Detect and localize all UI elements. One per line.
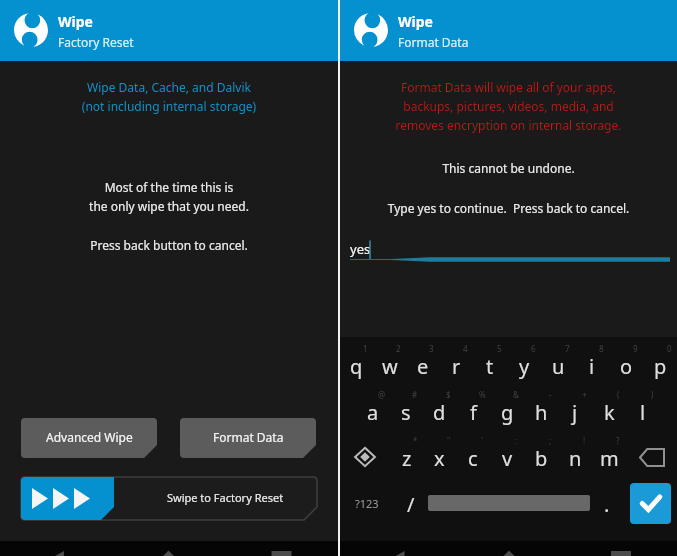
staticText: 2	[396, 343, 401, 354]
button[interactable]: yes	[350, 240, 677, 264]
staticText: Wipe	[58, 12, 93, 31]
button[interactable]: ?123	[340, 480, 394, 526]
staticText: $	[446, 389, 451, 400]
staticText: #	[412, 389, 418, 400]
button[interactable]: -	[524, 388, 558, 434]
staticText: Format Data will wipe all of your apps,	[340, 79, 677, 95]
button[interactable]: 9	[609, 342, 643, 388]
button[interactable]: "	[423, 434, 456, 480]
staticText: k	[604, 399, 615, 426]
button[interactable]: 2	[373, 342, 406, 388]
button[interactable]: Advanced Wipe	[21, 418, 157, 458]
button[interactable]: (	[592, 388, 626, 434]
staticText: -	[549, 389, 552, 400]
staticText: u	[552, 353, 565, 380]
button[interactable]: 0	[643, 342, 677, 388]
staticText: 8	[599, 343, 604, 354]
button[interactable]: Home	[112, 541, 225, 556]
button[interactable]: *	[390, 434, 423, 480]
button[interactable]: 5	[473, 342, 507, 388]
button[interactable]: 6	[507, 342, 541, 388]
button[interactable]: 7	[541, 342, 575, 388]
button[interactable]: Back	[0, 541, 112, 556]
button[interactable]: )	[626, 388, 660, 434]
button[interactable]: @	[356, 388, 389, 434]
staticText: Press back button to cancel.	[0, 237, 338, 253]
staticText: ?123	[355, 496, 379, 511]
staticText: t	[486, 353, 494, 380]
staticText: v	[502, 445, 513, 472]
button[interactable]: 8	[575, 342, 609, 388]
staticText: p	[654, 353, 667, 380]
staticText: e	[417, 353, 429, 380]
staticText: This cannot be undone.	[340, 160, 677, 176]
button[interactable]: :	[490, 434, 524, 480]
staticText: (not including internal storage)	[0, 98, 338, 114]
button[interactable]: Recents	[225, 541, 338, 556]
staticText: Most of the time this is	[0, 179, 338, 195]
button[interactable]: 4	[439, 342, 473, 388]
staticText: f	[470, 399, 477, 426]
staticText: c	[468, 445, 478, 472]
button[interactable]: Shift	[340, 434, 390, 480]
staticText: :	[515, 435, 518, 446]
button[interactable]: Back	[340, 541, 453, 556]
button[interactable]: 3	[406, 342, 439, 388]
staticText: y	[519, 353, 530, 380]
staticText: ?	[616, 435, 620, 446]
staticText: 9	[633, 343, 638, 354]
staticText: @	[378, 389, 386, 400]
staticText: Type yes to continue. Press back to canc…	[340, 200, 677, 216]
staticText: q	[350, 353, 363, 380]
staticText: 7	[565, 343, 570, 354]
button[interactable]: .	[590, 480, 624, 526]
staticText: '	[481, 435, 483, 446]
button[interactable]: Format Data	[180, 418, 316, 458]
staticText: +	[582, 389, 587, 400]
staticText: n	[569, 445, 582, 472]
button[interactable]: ?	[592, 434, 626, 480]
button[interactable]: '	[456, 434, 490, 480]
staticText: ;	[549, 435, 552, 446]
button[interactable]: $	[422, 388, 456, 434]
staticText: *	[413, 435, 418, 446]
staticText: yes	[350, 240, 371, 258]
staticText: 0	[667, 343, 672, 354]
staticText: s	[401, 399, 411, 426]
staticText: j	[572, 399, 578, 426]
staticText: 6	[531, 343, 536, 354]
button[interactable]: 1	[340, 342, 373, 388]
staticText: l	[640, 399, 646, 426]
staticText: )	[651, 389, 654, 400]
button[interactable]: Backspace	[626, 434, 677, 480]
button[interactable]: !	[558, 434, 592, 480]
button[interactable]: &	[490, 388, 524, 434]
button[interactable]: Recents	[565, 541, 677, 556]
staticText: m	[600, 445, 619, 472]
staticText: r	[452, 353, 461, 380]
staticText: w	[382, 353, 398, 380]
button[interactable]: Swipe to Factory Reset	[21, 477, 317, 520]
staticText: h	[535, 399, 548, 426]
staticText: Format Data	[213, 429, 284, 445]
button[interactable]: %	[456, 388, 490, 434]
staticText: d	[433, 399, 446, 426]
button[interactable]: +	[558, 388, 592, 434]
staticText: (	[617, 389, 620, 400]
staticText: i	[589, 353, 595, 380]
staticText: g	[501, 399, 514, 426]
button[interactable]: #	[389, 388, 422, 434]
button[interactable]: /	[394, 480, 428, 526]
staticText: x	[434, 445, 445, 472]
staticText: 3	[429, 343, 434, 354]
button[interactable]: Space	[428, 480, 590, 526]
staticText: z	[402, 445, 412, 472]
staticText: the only wipe that you need.	[0, 198, 338, 214]
staticText: /	[407, 491, 415, 518]
button[interactable]: ;	[524, 434, 558, 480]
staticText: "	[447, 435, 451, 446]
button[interactable]: Enter	[624, 480, 677, 526]
button[interactable]: Home	[453, 541, 565, 556]
staticText: .	[604, 491, 610, 518]
staticText: backups, pictures, videos, media, and	[340, 98, 677, 114]
